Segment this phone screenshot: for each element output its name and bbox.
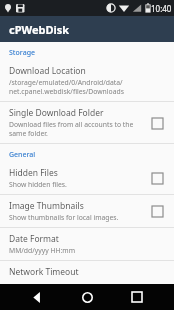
button[interactable]: Download Location (0, 60, 174, 101)
button[interactable]: Single Download Folder (0, 102, 174, 143)
button[interactable]: Date Format (0, 228, 174, 260)
staticText: Storage (9, 48, 35, 58)
button[interactable]: Image Thumbnails (0, 195, 174, 227)
staticText: 10:40 (151, 3, 172, 14)
button[interactable]: Home (74, 284, 100, 310)
staticText: Show thumbnails for local images. (9, 213, 119, 222)
staticText: Network Timeout (9, 266, 79, 278)
staticText: /storage/emulated/0/Android/data/ net.cp… (9, 78, 124, 96)
staticText: Image Thumbnails (9, 200, 84, 212)
button[interactable]: Toggle Single Download Folder (147, 113, 167, 133)
button[interactable]: Recent apps (124, 284, 150, 310)
staticText: MM/dd/yyyy HH:mm (9, 246, 75, 255)
staticText: General (9, 150, 36, 160)
staticText: cPWebDisk (9, 22, 70, 37)
button[interactable]: Network Timeout (0, 261, 174, 283)
staticText: Show hidden files. (9, 180, 67, 189)
staticText: Download Location (9, 65, 86, 77)
button[interactable]: Back (24, 284, 50, 310)
staticText: Hidden Files (9, 167, 58, 179)
staticText: Single Download Folder (9, 107, 104, 119)
staticText: Date Format (9, 233, 59, 245)
staticText: Download files from all accounts to the … (9, 120, 134, 138)
button[interactable]: Toggle Hidden Files (147, 168, 167, 188)
button[interactable]: Hidden Files (0, 162, 174, 194)
button[interactable]: Toggle Image Thumbnails (147, 201, 167, 221)
